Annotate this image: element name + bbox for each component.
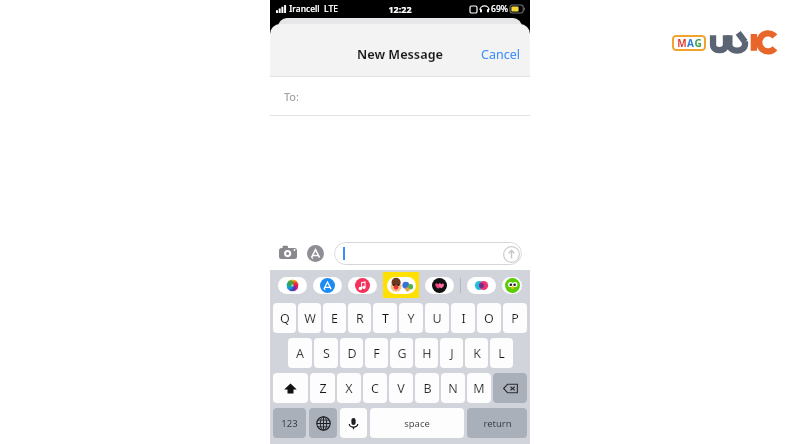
staticText: 123 (281, 417, 298, 430)
button[interactable]: N (441, 373, 465, 403)
button[interactable]: T (373, 303, 397, 333)
button[interactable]: Camera (278, 243, 298, 263)
staticText: F (373, 345, 380, 362)
button[interactable]: H (415, 338, 438, 368)
button[interactable]: Images (467, 277, 496, 294)
button[interactable]: 123 (273, 408, 306, 438)
staticText: A (296, 345, 304, 362)
staticText: Irancell (289, 3, 320, 15)
staticText: B (423, 380, 432, 397)
button[interactable]: Z (310, 373, 335, 403)
button[interactable]: Shift (273, 373, 308, 403)
staticText: R (356, 310, 364, 327)
staticText: T (382, 310, 389, 327)
staticText: space (404, 417, 430, 430)
button[interactable]: D (340, 338, 363, 368)
staticText: A (687, 36, 694, 50)
button[interactable]: M (467, 373, 491, 403)
staticText: W (304, 310, 316, 327)
button[interactable]: V (389, 373, 413, 403)
button[interactable]: L (490, 338, 513, 368)
button[interactable]: X (337, 373, 361, 403)
staticText: Z (319, 380, 327, 397)
staticText: LTE (324, 3, 338, 15)
staticText: C (371, 380, 379, 397)
button[interactable]: E (323, 303, 346, 333)
button[interactable]: P (503, 303, 527, 333)
staticText: Q (280, 310, 290, 327)
button[interactable]: Send (334, 242, 522, 265)
button[interactable]: Backspace (493, 373, 527, 403)
button[interactable]: Digital Touch (425, 277, 454, 294)
button[interactable]: B (415, 373, 439, 403)
button[interactable]: Photos (278, 277, 307, 294)
staticText: N (448, 380, 458, 397)
staticText: M (677, 36, 687, 50)
staticText: L (498, 345, 505, 362)
staticText: G (397, 345, 407, 362)
staticText: New Message (357, 46, 443, 63)
button[interactable]: To: (270, 77, 530, 115)
button[interactable]: space (370, 408, 464, 438)
button[interactable]: R (348, 303, 371, 333)
staticText: J (450, 345, 454, 362)
button[interactable]: F (365, 338, 388, 368)
staticText: M (473, 380, 485, 397)
staticText: I (461, 310, 466, 327)
staticText: Cancel (481, 46, 520, 63)
button[interactable]: J (440, 338, 463, 368)
staticText: D (347, 345, 357, 362)
button[interactable]: Y (399, 303, 423, 333)
staticText: K (473, 345, 481, 362)
button[interactable]: Cancel (471, 40, 530, 69)
button[interactable]: I (451, 303, 475, 333)
button[interactable]: G (390, 338, 413, 368)
button[interactable]: S (314, 338, 338, 368)
button[interactable]: W (298, 303, 321, 333)
staticText: S (323, 345, 330, 362)
staticText: V (397, 380, 405, 397)
staticText: Y (407, 310, 415, 327)
button[interactable]: Dictate (340, 408, 367, 438)
button[interactable]: U (425, 303, 449, 333)
staticText: O (484, 310, 494, 327)
staticText: 12:22 (388, 3, 412, 15)
button[interactable]: K (465, 338, 488, 368)
button[interactable]: O (477, 303, 501, 333)
button[interactable]: Send (502, 245, 520, 263)
staticText: P (511, 310, 519, 327)
button[interactable]: A (288, 338, 312, 368)
staticText: To: (284, 89, 299, 104)
button[interactable]: Music (348, 277, 377, 294)
staticText: U (432, 310, 442, 327)
staticText: E (331, 310, 338, 327)
button[interactable]: Q (273, 303, 296, 333)
button[interactable]: Switch keyboard (309, 408, 337, 438)
staticText: return (483, 417, 512, 430)
button[interactable]: App Store (313, 277, 342, 294)
button[interactable]: Duolingo (502, 277, 522, 294)
staticText: 69% (491, 3, 508, 15)
button[interactable]: Memoji stickers (383, 272, 419, 298)
staticText: G (694, 36, 702, 50)
button[interactable]: C (363, 373, 387, 403)
button[interactable]: App Store (306, 244, 325, 263)
staticText: X (345, 380, 353, 397)
button[interactable]: return (467, 408, 527, 438)
staticText: H (422, 345, 432, 362)
